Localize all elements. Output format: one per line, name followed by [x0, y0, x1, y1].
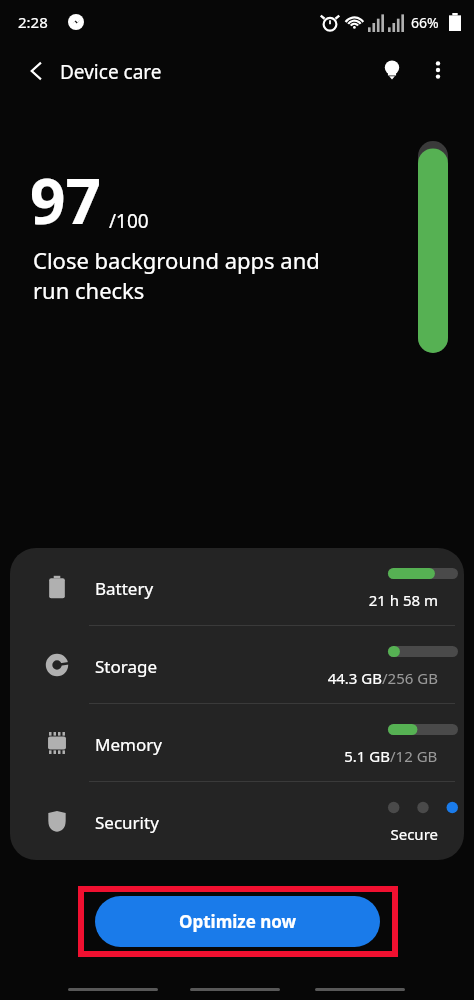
button[interactable]: Back	[14, 48, 60, 94]
staticText: /100	[109, 208, 149, 234]
staticText: Optimize now	[179, 910, 297, 933]
staticText: 21 h 58 m	[368, 590, 438, 610]
staticText: 97	[30, 158, 101, 242]
staticText: 44.3 GB	[323, 668, 382, 688]
staticText: Device care	[60, 59, 162, 85]
button[interactable]: Memory	[10, 704, 464, 781]
staticText: Security	[95, 811, 159, 834]
button[interactable]: Security	[10, 782, 464, 859]
staticText: Memory	[95, 733, 162, 756]
staticText: Storage	[95, 655, 158, 678]
button[interactable]: Storage	[10, 626, 464, 703]
staticText: 5.1 GB	[340, 746, 390, 766]
staticText: 2:28	[18, 12, 48, 32]
button[interactable]: Optimize now	[95, 896, 380, 947]
staticText: Secure	[390, 824, 438, 844]
staticText: 66%	[411, 13, 439, 32]
staticText: /256 GB	[382, 668, 438, 688]
button[interactable]: Tips	[370, 48, 414, 92]
button[interactable]: Battery	[10, 548, 464, 625]
staticText: Close background apps and run checks	[33, 245, 393, 306]
staticText: Battery	[95, 577, 154, 600]
staticText: /12 GB	[390, 746, 438, 766]
button[interactable]: More options	[416, 48, 460, 92]
